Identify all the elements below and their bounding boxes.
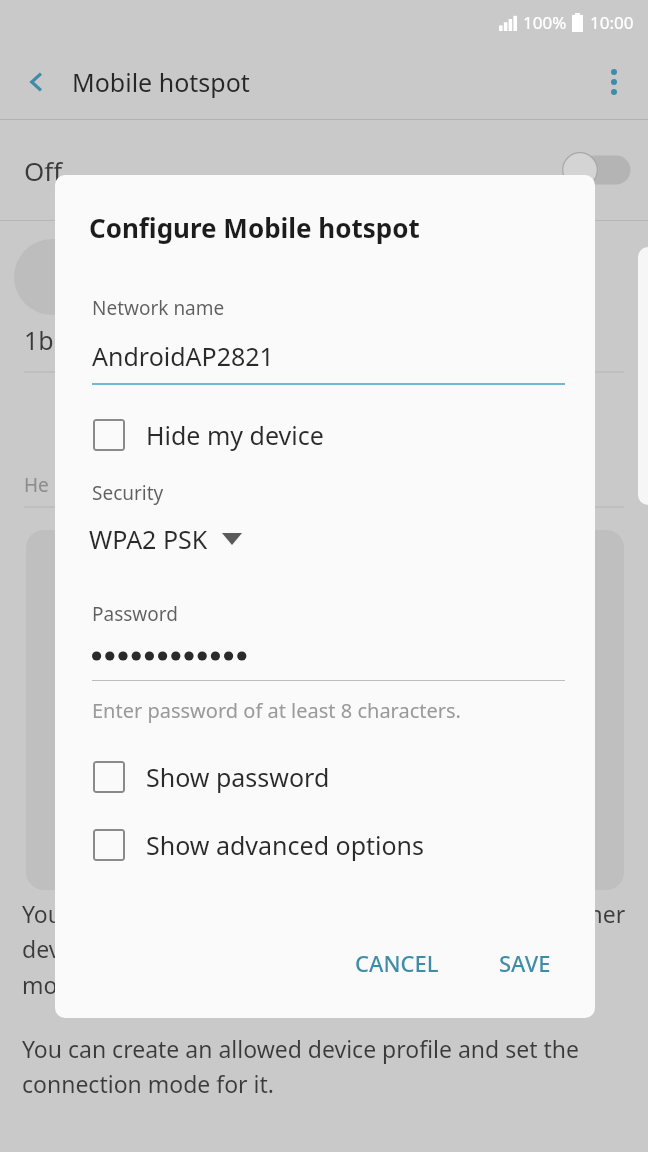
button[interactable]: Back xyxy=(14,59,60,105)
staticText: 10:00 xyxy=(590,11,634,34)
staticText: You can create an allowed device profile… xyxy=(22,1033,632,1100)
staticText: WPA2 PSK xyxy=(89,522,208,556)
staticText: Network name xyxy=(92,295,225,321)
button[interactable]: Hide my device xyxy=(55,410,595,460)
staticText: CANCEL xyxy=(355,948,439,978)
staticText: 100% xyxy=(523,11,567,34)
button[interactable]: More options xyxy=(590,58,638,106)
button[interactable]: Off xyxy=(0,120,648,220)
staticText: SAVE xyxy=(499,948,551,978)
staticText: Show password xyxy=(146,760,330,794)
button[interactable]: SAVE xyxy=(483,938,567,988)
staticText: Configure Mobile hotspot xyxy=(89,210,420,245)
staticText: Show advanced options xyxy=(146,828,425,862)
button[interactable]: WPA2 PSK xyxy=(89,522,242,556)
staticText: You can use your device as a mobile hots… xyxy=(22,898,632,1001)
button[interactable]: Show password xyxy=(55,752,595,802)
button[interactable]: CANCEL xyxy=(339,938,455,988)
staticText: Hide my device xyxy=(146,418,324,452)
staticText: Password xyxy=(92,601,178,627)
button[interactable]: Show advanced options xyxy=(55,820,595,870)
staticText: He xyxy=(24,472,49,498)
staticText: 1b xyxy=(24,323,54,357)
staticText: Mobile hotspot xyxy=(72,65,250,99)
staticText: Security xyxy=(92,480,164,506)
staticText: AndroidAP2821 xyxy=(92,339,274,373)
staticText: Enter password of at least 8 characters. xyxy=(92,697,461,724)
staticText: Off xyxy=(24,153,63,188)
